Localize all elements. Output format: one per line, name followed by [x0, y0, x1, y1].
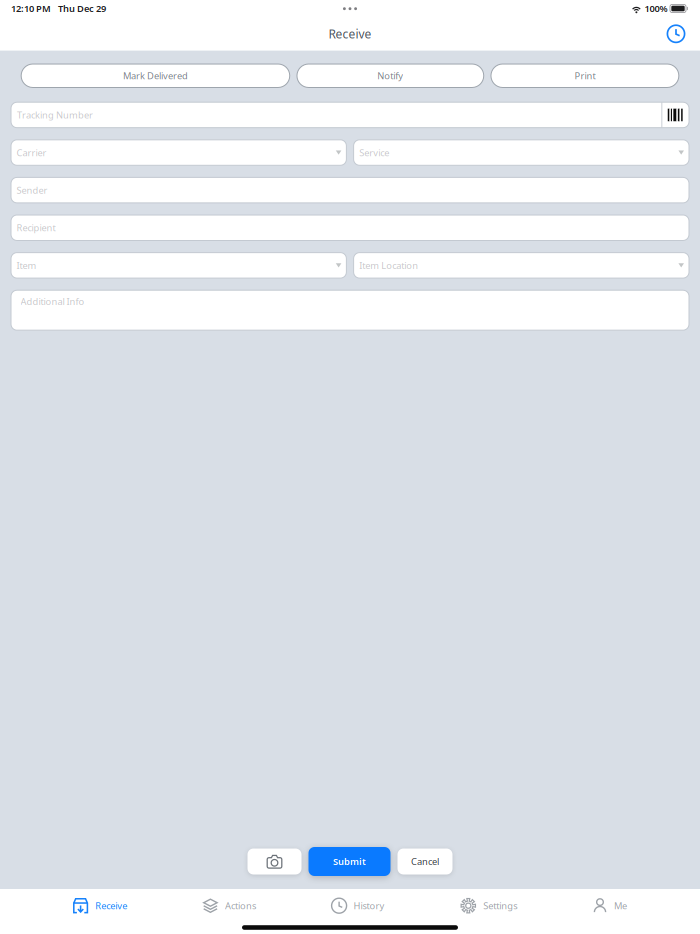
- staticText: 12:10 PM: [11, 2, 51, 15]
- staticText: Notify: [377, 70, 403, 82]
- staticText: Item Location: [359, 259, 418, 272]
- staticText: Thu Dec 29: [58, 2, 106, 15]
- staticText: Service: [359, 146, 389, 159]
- staticText: Print: [574, 70, 595, 82]
- staticText: Cancel: [411, 855, 439, 868]
- staticText: Receive: [328, 26, 371, 42]
- button[interactable]: Me: [593, 891, 627, 921]
- staticText: Recipient: [17, 222, 56, 234]
- staticText: Mark Delivered: [123, 70, 188, 82]
- button[interactable]: History: [661, 19, 691, 49]
- staticText: Carrier: [17, 146, 47, 159]
- staticText: Receive: [95, 899, 127, 912]
- staticText: Settings: [483, 899, 517, 912]
- staticText: Me: [614, 899, 627, 912]
- staticText: History: [354, 899, 385, 912]
- staticText: Additional Info: [21, 295, 85, 308]
- button[interactable]: History: [332, 891, 385, 921]
- button[interactable]: Actions: [203, 891, 256, 921]
- button[interactable]: Cancel: [397, 848, 452, 874]
- staticText: Sender: [17, 184, 48, 196]
- button[interactable]: Receive: [73, 891, 127, 921]
- staticText: 100%: [644, 2, 667, 15]
- button[interactable]: Print: [491, 64, 679, 87]
- button[interactable]: Scan barcode: [661, 102, 689, 128]
- staticText: Submit: [333, 855, 366, 868]
- button[interactable]: Mark Delivered: [21, 64, 290, 87]
- staticText: Tracking Number: [17, 109, 93, 121]
- button[interactable]: Take photo: [247, 848, 301, 874]
- staticText: Actions: [225, 899, 256, 912]
- button[interactable]: Submit: [308, 847, 390, 876]
- staticText: Item: [17, 259, 37, 272]
- button[interactable]: Notify: [297, 64, 484, 87]
- button[interactable]: Settings: [460, 891, 517, 921]
